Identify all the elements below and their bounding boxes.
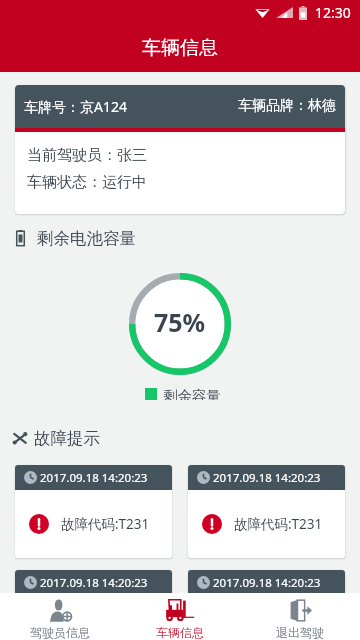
- button[interactable]: 2017.09.18 14:20:23: [188, 570, 345, 640]
- button[interactable]: 2017.09.18 14:20:23: [15, 570, 172, 640]
- staticText: 故障提示: [34, 428, 100, 448]
- staticText: 故障代码:T231: [61, 609, 150, 627]
- button[interactable]: 2017.09.18 14:20:23: [188, 465, 345, 558]
- button[interactable]: 车辆信息: [120, 593, 240, 640]
- staticText: 车辆品牌：林德: [238, 97, 336, 115]
- staticText: 驾驶员信息: [30, 625, 90, 640]
- staticText: 车辆状态：运行中: [27, 173, 147, 192]
- staticText: 2017.09.18 14:20:23: [213, 470, 321, 486]
- staticText: 12:30: [315, 3, 351, 22]
- staticText: 车辆信息: [142, 36, 218, 60]
- staticText: 退出驾驶: [276, 625, 324, 640]
- staticText: 2017.09.18 14:20:23: [40, 470, 148, 486]
- staticText: 75%: [154, 305, 206, 339]
- staticText: 剩余容量: [163, 387, 221, 400]
- staticText: 剩余电池容量: [37, 228, 136, 248]
- staticText: 故障代码:T231: [61, 515, 150, 533]
- staticText: 车辆信息: [156, 625, 204, 640]
- button[interactable]: 驾驶员信息: [0, 593, 120, 640]
- button[interactable]: 车牌号：京A124: [15, 85, 345, 214]
- staticText: 2017.09.18 14:20:23: [40, 575, 148, 591]
- button[interactable]: 2017.09.18 14:20:23: [15, 465, 172, 558]
- staticText: 当前驾驶员：张三: [27, 146, 147, 165]
- staticText: 2017.09.18 14:20:23: [213, 575, 321, 591]
- staticText: 车牌号：京A124: [24, 97, 127, 116]
- button[interactable]: 退出驾驶: [240, 593, 360, 640]
- staticText: 故障代码:T231: [234, 609, 323, 627]
- staticText: 故障代码:T231: [234, 515, 323, 533]
